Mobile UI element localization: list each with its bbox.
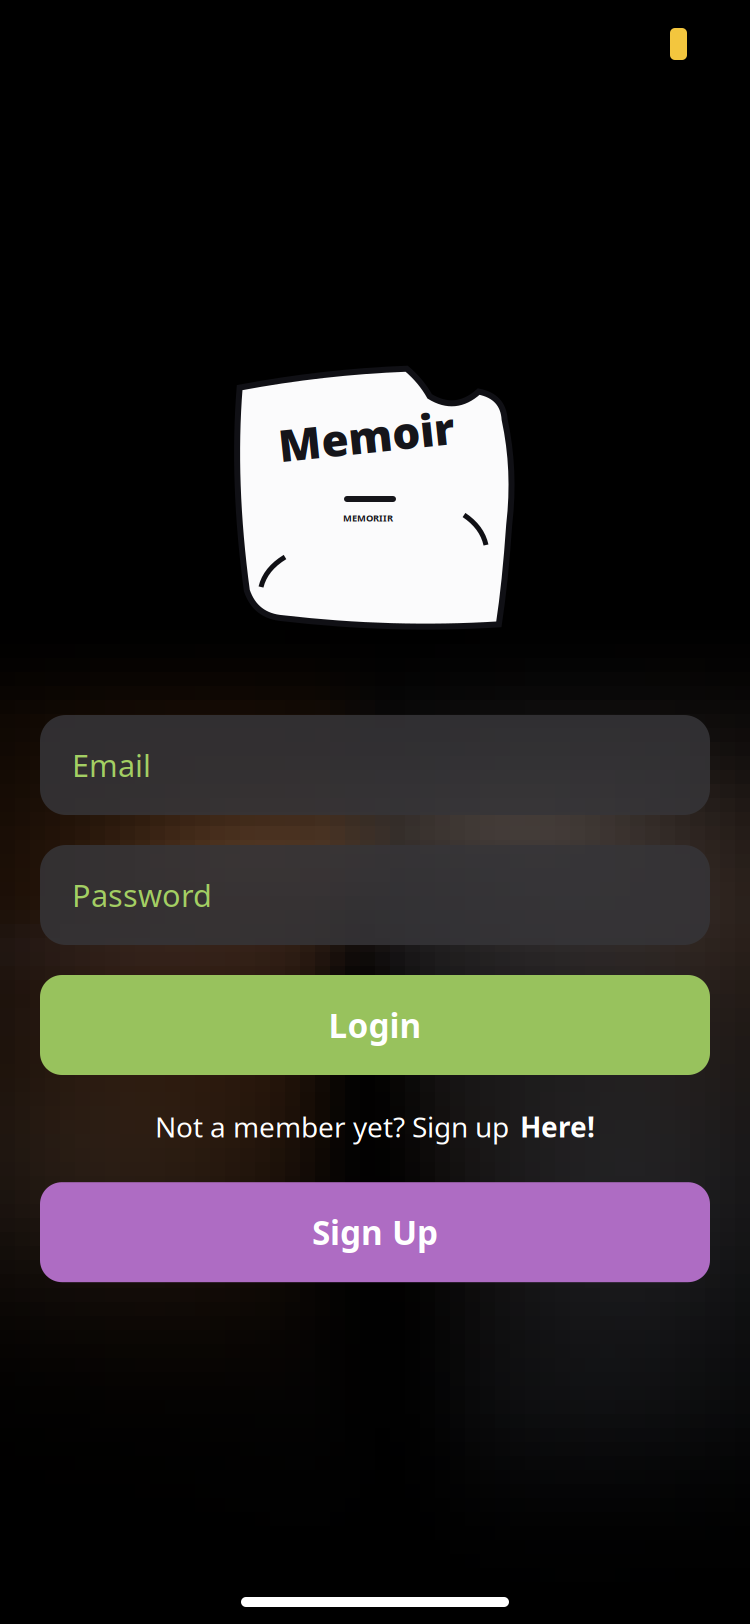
button[interactable]: Login: [40, 975, 710, 1075]
button[interactable]: Email: [40, 715, 710, 815]
staticText: Login: [328, 1003, 421, 1047]
staticText: Sign Up: [312, 1210, 438, 1254]
staticText: Email: [72, 745, 151, 785]
staticText: MEMORIIR: [343, 512, 393, 524]
button[interactable]: Password: [40, 845, 710, 945]
button[interactable]: Sign Up: [40, 1182, 710, 1282]
staticText: Password: [72, 875, 212, 915]
button[interactable]: Here!: [520, 1108, 595, 1145]
staticText: Here!: [520, 1108, 595, 1145]
staticText: Not a member yet? Sign up: [155, 1108, 509, 1145]
staticText: Memoir: [278, 407, 455, 465]
